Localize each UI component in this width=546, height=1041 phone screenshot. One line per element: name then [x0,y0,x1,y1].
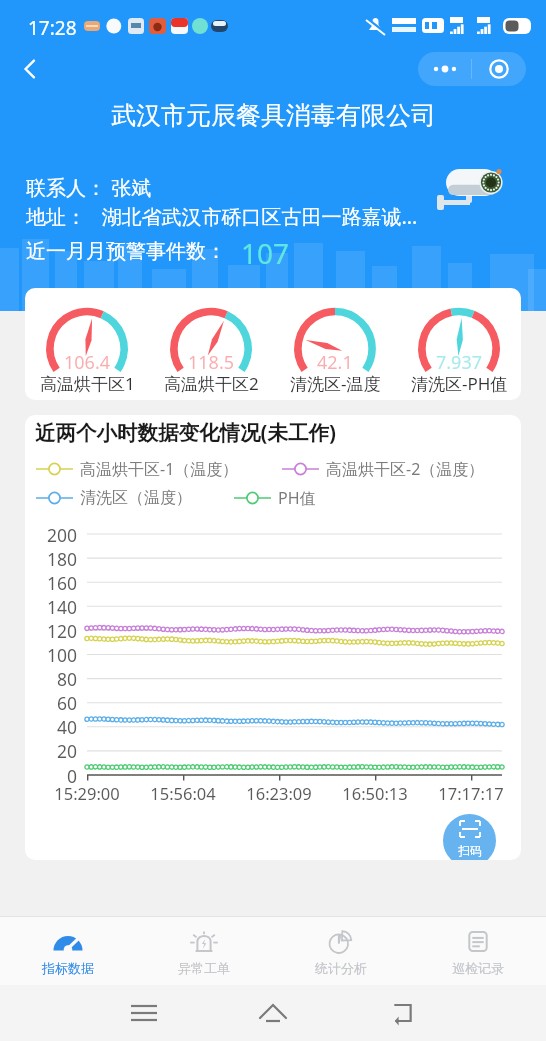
button[interactable]: 高温烘干区-1（温度） [36,458,195,480]
staticText: PH值 [278,487,316,509]
button[interactable]: 高温烘干区-2（温度） [282,458,441,480]
button[interactable]: 7.937 [397,288,521,400]
button[interactable]: Back [8,47,52,91]
staticText: 高温烘干区-1（温度） [80,458,239,480]
staticText: 统计分析 [315,960,367,976]
button[interactable]: 扫码 [443,814,496,860]
staticText: 16:50:13 [339,782,411,804]
staticText: 17:17:17 [435,782,507,804]
staticText: 100 [33,643,77,667]
staticText: 巡检记录 [452,960,504,976]
staticText: 清洗区-PH值 [411,372,508,395]
staticText: 地址： 湖北省武汉市硚口区古田一路嘉诚… [26,203,418,230]
staticText: 近两个小时数据变化情况(未工作) [35,418,336,446]
staticText: 清洗区-温度 [290,372,381,395]
staticText: 17:28 [28,15,77,41]
staticText: 200 [33,523,77,547]
staticText: 16:23:09 [243,782,315,804]
staticText: 42.1 [317,350,353,375]
staticText: 清洗区（温度） [80,488,192,508]
staticText: 15:29:00 [51,782,123,804]
staticText: 15:56:04 [147,782,219,804]
staticText: 107 [241,234,290,272]
staticText: 高温烘干区1 [40,372,135,395]
button[interactable]: PH值 [234,487,272,509]
staticText: 180 [33,547,77,571]
staticText: 武汉市元辰餐具消毒有限公司 [111,100,436,131]
staticText: 指标数据 [42,960,94,976]
button[interactable]: 42.1 [273,288,397,400]
staticText: 160 [33,571,77,595]
button[interactable]: 异常工单 [136,917,272,976]
button[interactable]: 统计分析 [272,917,409,976]
staticText: 高温烘干区-2（温度） [326,458,485,480]
staticText: 20 [33,739,77,763]
button[interactable]: 巡检记录 [409,917,546,976]
staticText: 80 [33,667,77,691]
staticText: 0 [33,764,77,788]
staticText: 120 [33,619,77,643]
staticText: 60 [33,691,77,715]
staticText: 联系人： 张斌 [26,174,152,201]
staticText: 118.5 [188,350,235,375]
staticText: 近一月月预警事件数： [26,239,226,264]
button[interactable]: More options [418,52,471,86]
staticText: 7.937 [436,350,483,375]
button[interactable]: Close [472,52,526,86]
staticText: 异常工单 [178,960,230,976]
button[interactable]: 106.4 [25,288,149,400]
staticText: 106.4 [64,350,111,375]
staticText: 扫码 [458,843,482,858]
staticText: 40 [33,715,77,739]
button[interactable]: Recent apps [118,987,170,1039]
button[interactable]: 清洗区（温度） [36,487,148,509]
button[interactable]: Home [247,987,299,1039]
button[interactable]: Back [376,987,428,1039]
button[interactable]: 指标数据 [0,917,136,976]
staticText: 高温烘干区2 [164,372,259,395]
staticText: 140 [33,595,77,619]
button[interactable]: 118.5 [149,288,273,400]
